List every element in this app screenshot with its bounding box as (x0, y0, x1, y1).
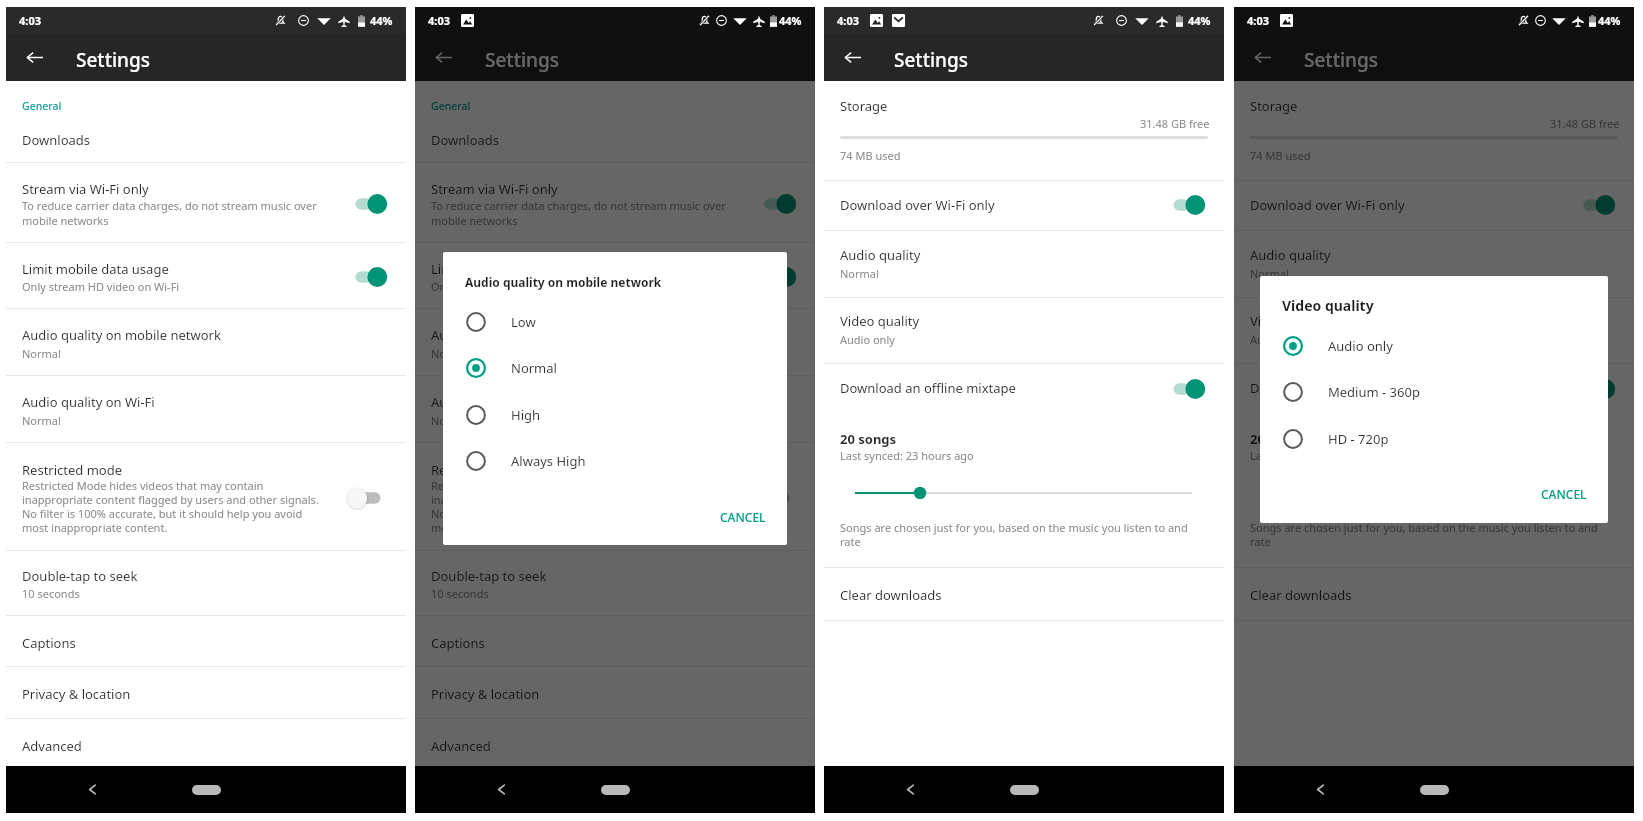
staticText: Audio quality (840, 246, 921, 264)
button[interactable]: Download over Wi-Fi only (824, 181, 1224, 230)
button[interactable]: Back (832, 34, 872, 81)
button[interactable]: Privacy & location (6, 667, 406, 718)
staticText: Stream via Wi-Fi only (431, 180, 558, 198)
staticText: 44% (779, 13, 802, 28)
button[interactable]: Toggle (1170, 376, 1211, 402)
button[interactable]: Clear downloads (1234, 568, 1634, 620)
button[interactable]: Double-tap to seek (415, 551, 815, 615)
button[interactable]: Toggle (352, 485, 393, 511)
button[interactable]: Captions (415, 616, 815, 666)
staticText: HD - 720p (1328, 430, 1389, 448)
button[interactable]: Storage (824, 82, 1224, 180)
staticText: 4:03 (428, 13, 450, 28)
button[interactable]: Audio only (1260, 322, 1608, 369)
button[interactable]: Medium - 360p (1260, 368, 1608, 415)
button[interactable]: Audio quality on Wi-Fi (415, 376, 815, 442)
button[interactable]: Back (880, 766, 940, 813)
staticText: Audio only (1328, 337, 1393, 355)
button[interactable]: Toggle (1580, 376, 1621, 402)
button[interactable]: Download over Wi-Fi only (1234, 181, 1634, 230)
button[interactable]: Back (1242, 34, 1282, 81)
button[interactable]: Home (601, 785, 630, 795)
button[interactable]: Audio quality on mobile network (6, 309, 406, 375)
staticText: CANCEL (720, 509, 766, 525)
button[interactable]: Audio quality on mobile network (415, 309, 815, 375)
button[interactable]: Low (443, 298, 787, 345)
staticText: Clear downloads (840, 586, 942, 604)
button[interactable]: Normal (443, 344, 787, 391)
button[interactable]: Clear downloads (824, 568, 1224, 620)
button[interactable]: CANCEL (1529, 479, 1599, 509)
staticText: Only stream HD video on Wi-Fi (431, 279, 589, 294)
staticText: Audio only (840, 332, 895, 347)
button[interactable]: Number of songs (1259, 484, 1608, 502)
staticText: Medium - 360p (1328, 383, 1420, 401)
staticText: Video quality (1282, 296, 1374, 315)
button[interactable]: Restricted mode (415, 443, 815, 550)
button[interactable]: Toggle (761, 485, 802, 511)
staticText: Normal (22, 413, 61, 428)
button[interactable]: Video quality (824, 298, 1224, 363)
button[interactable]: Back (14, 34, 54, 81)
button[interactable]: Back (471, 766, 531, 813)
button[interactable]: Downloads (6, 118, 406, 162)
staticText: Last synced: 23 hours ago (1250, 448, 1384, 463)
staticText: 10 seconds (431, 586, 489, 601)
staticText: Normal (431, 346, 470, 361)
button[interactable]: Audio quality (824, 231, 1224, 297)
button[interactable]: Toggle (1580, 192, 1621, 218)
button[interactable]: Back (62, 766, 122, 813)
staticText: 31.48 GB free (1550, 116, 1620, 131)
button[interactable]: Back (423, 34, 463, 81)
button[interactable]: HD - 720p (1260, 415, 1608, 462)
button[interactable]: Captions (6, 616, 406, 666)
button[interactable]: Audio quality (1234, 231, 1634, 297)
button[interactable]: Download an offline mixtape (1234, 364, 1634, 413)
button[interactable]: Advanced (6, 719, 406, 766)
staticText: Audio only (1250, 332, 1305, 347)
button[interactable]: Audio quality on Wi-Fi (6, 376, 406, 442)
button[interactable]: Limit mobile data usage (6, 243, 406, 308)
button[interactable]: Back (1290, 766, 1350, 813)
button[interactable]: Storage (1234, 82, 1634, 180)
button[interactable]: Toggle (352, 191, 393, 217)
button[interactable]: Video quality (1234, 298, 1634, 363)
button[interactable]: Privacy & location (415, 667, 815, 718)
button[interactable]: Toggle (1170, 192, 1211, 218)
staticText: To reduce carrier data charges, do not s… (22, 198, 317, 228)
button[interactable]: Downloads (415, 118, 815, 162)
button[interactable]: Home (1420, 785, 1449, 795)
staticText: 20 songs (1250, 430, 1307, 448)
button[interactable]: Toggle (352, 264, 393, 290)
staticText: General (431, 99, 471, 113)
staticText: Restricted mode (22, 461, 123, 479)
button[interactable]: High (443, 391, 787, 438)
button[interactable]: Always High (443, 437, 787, 484)
staticText: Double-tap to seek (431, 567, 547, 585)
button[interactable]: Double-tap to seek (6, 551, 406, 615)
button[interactable]: Restricted mode (6, 443, 406, 550)
button[interactable]: Home (1010, 785, 1039, 795)
staticText: 44% (779, 13, 802, 28)
staticText: Audio quality on mobile network (431, 326, 630, 344)
button[interactable]: Stream via Wi-Fi only (6, 163, 406, 242)
button[interactable]: Toggle (761, 264, 802, 290)
staticText: 4:03 (19, 13, 41, 28)
button[interactable]: CANCEL (708, 502, 778, 532)
staticText: Normal (1250, 266, 1289, 281)
staticText: General (22, 99, 62, 113)
staticText: Normal (22, 346, 61, 361)
button[interactable]: Home (192, 785, 221, 795)
button[interactable]: Advanced (415, 719, 815, 766)
button[interactable]: Download an offline mixtape (824, 364, 1224, 413)
staticText: Songs are chosen just for you, based on … (1250, 520, 1598, 549)
staticText: Only stream HD video on Wi-Fi (22, 279, 180, 294)
staticText: 74 MB used (1250, 148, 1311, 163)
button[interactable]: Stream via Wi-Fi only (415, 163, 815, 242)
staticText: To reduce carrier data charges, do not s… (431, 198, 726, 228)
button[interactable]: Number of songs (849, 484, 1198, 502)
staticText: 44% (1598, 13, 1621, 28)
button[interactable]: Toggle (761, 191, 802, 217)
staticText: Storage (840, 97, 888, 115)
button[interactable]: Limit mobile data usage (415, 243, 815, 308)
